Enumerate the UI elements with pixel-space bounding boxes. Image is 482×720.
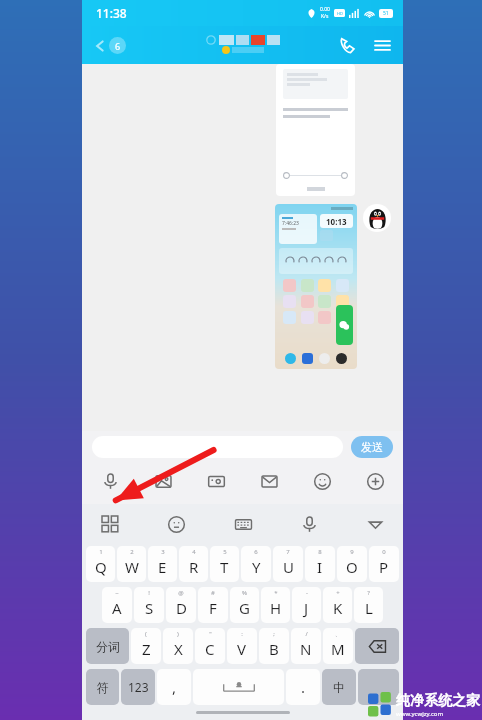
staticText: A: [112, 598, 122, 618]
button[interactable]: Back: [90, 33, 130, 58]
button[interactable]: 6: [241, 546, 271, 582]
staticText: E: [158, 557, 167, 577]
button[interactable]: 符: [86, 669, 119, 705]
button[interactable]: /: [291, 628, 321, 664]
button[interactable]: 5: [210, 546, 239, 582]
button[interactable]: 7:46:23: [275, 204, 357, 369]
button[interactable]: Menu: [372, 35, 393, 56]
staticText: 中: [333, 680, 345, 695]
button[interactable]: ,: [157, 669, 191, 705]
staticText: ,: [172, 677, 177, 697]
button[interactable]: ?: [354, 587, 383, 623]
button[interactable]: Call: [337, 35, 358, 56]
button[interactable]: (: [131, 628, 161, 664]
staticText: 符: [97, 680, 109, 695]
staticText: 123: [128, 679, 149, 695]
button[interactable]: Camera: [202, 467, 230, 495]
button[interactable]: *: [261, 587, 290, 623]
button[interactable]: ~: [102, 587, 132, 623]
staticText: 0: [382, 548, 386, 556]
button[interactable]: Red packet: [255, 467, 283, 495]
staticText: .: [301, 677, 306, 697]
staticText: H: [270, 598, 282, 618]
button[interactable]: -: [292, 587, 321, 623]
button[interactable]: %: [230, 587, 259, 623]
staticText: 2: [130, 548, 134, 556]
button[interactable]: 2: [117, 546, 146, 582]
staticText: 6: [254, 548, 258, 556]
button[interactable]: 123: [121, 669, 155, 705]
button[interactable]: @: [166, 587, 196, 623]
button[interactable]: 中: [322, 669, 356, 705]
staticText: ;: [273, 630, 275, 638]
staticText: I: [317, 557, 323, 577]
staticText: Z: [142, 639, 151, 659]
button[interactable]: 9: [337, 546, 367, 582]
staticText: Y: [252, 557, 261, 577]
staticText: 10:13: [326, 216, 347, 227]
staticText: R: [189, 557, 199, 577]
staticText: F: [209, 598, 217, 618]
button[interactable]: More: [361, 467, 389, 495]
staticText: ~: [115, 589, 119, 597]
button[interactable]: 1: [86, 546, 115, 582]
staticText: D: [176, 598, 187, 618]
staticText: S: [145, 598, 154, 618]
button[interactable]: .: [286, 669, 320, 705]
button[interactable]: 3: [148, 546, 177, 582]
staticText: 8: [318, 548, 322, 556]
staticText: 发送: [361, 440, 383, 454]
staticText: ): [177, 630, 179, 638]
staticText: C: [205, 639, 215, 659]
button[interactable]: Keyboard: [229, 510, 257, 538]
staticText: P: [379, 557, 389, 577]
staticText: K/s: [321, 13, 329, 20]
staticText: /: [305, 630, 308, 638]
staticText: 0.00: [320, 6, 330, 13]
staticText: Q: [95, 557, 107, 577]
staticText: W: [125, 557, 139, 577]
button[interactable]: 4: [179, 546, 208, 582]
staticText: 7: [286, 548, 290, 556]
button[interactable]: 7: [273, 546, 303, 582]
button[interactable]: Stickers: [162, 510, 190, 538]
button[interactable]: !: [134, 587, 164, 623]
staticText: @: [178, 589, 184, 597]
staticText: N: [300, 639, 312, 659]
staticText: !: [148, 589, 150, 597]
button[interactable]: #: [198, 587, 228, 623]
button[interactable]: 8: [305, 546, 335, 582]
button[interactable]: 分词: [86, 628, 129, 664]
staticText: 6: [115, 40, 121, 52]
button[interactable]: Backspace: [355, 628, 399, 664]
staticText: ?: [367, 589, 370, 597]
button[interactable]: Album: [149, 467, 177, 495]
button[interactable]: [92, 436, 343, 458]
staticText: %: [242, 589, 247, 597]
button[interactable]: Hide keyboard: [361, 510, 389, 538]
staticText: K: [333, 598, 343, 618]
staticText: 9: [350, 548, 354, 556]
staticText: 7:46:23: [282, 220, 299, 227]
button[interactable]: ): [163, 628, 193, 664]
button[interactable]: +: [323, 587, 352, 623]
button[interactable]: 发送: [351, 436, 393, 458]
button[interactable]: Voice input: [295, 510, 323, 538]
button[interactable]: Voice: [96, 467, 124, 495]
staticText: 分词: [96, 639, 120, 654]
staticText: 、: [335, 630, 341, 638]
staticText: -: [306, 589, 308, 597]
button[interactable]: Toolbox: [96, 510, 124, 538]
button[interactable]: Space: [193, 669, 284, 705]
button[interactable]: Enter: [358, 669, 399, 705]
button[interactable]: :: [227, 628, 257, 664]
staticText: 4: [192, 548, 196, 556]
staticText: 51: [383, 10, 389, 17]
button[interactable]: [276, 64, 355, 196]
button[interactable]: ": [195, 628, 225, 664]
button[interactable]: ;: [259, 628, 289, 664]
button[interactable]: 、: [323, 628, 353, 664]
button[interactable]: 0: [369, 546, 399, 582]
button[interactable]: Emoji: [308, 467, 336, 495]
button[interactable]: Avatar: [363, 204, 391, 232]
